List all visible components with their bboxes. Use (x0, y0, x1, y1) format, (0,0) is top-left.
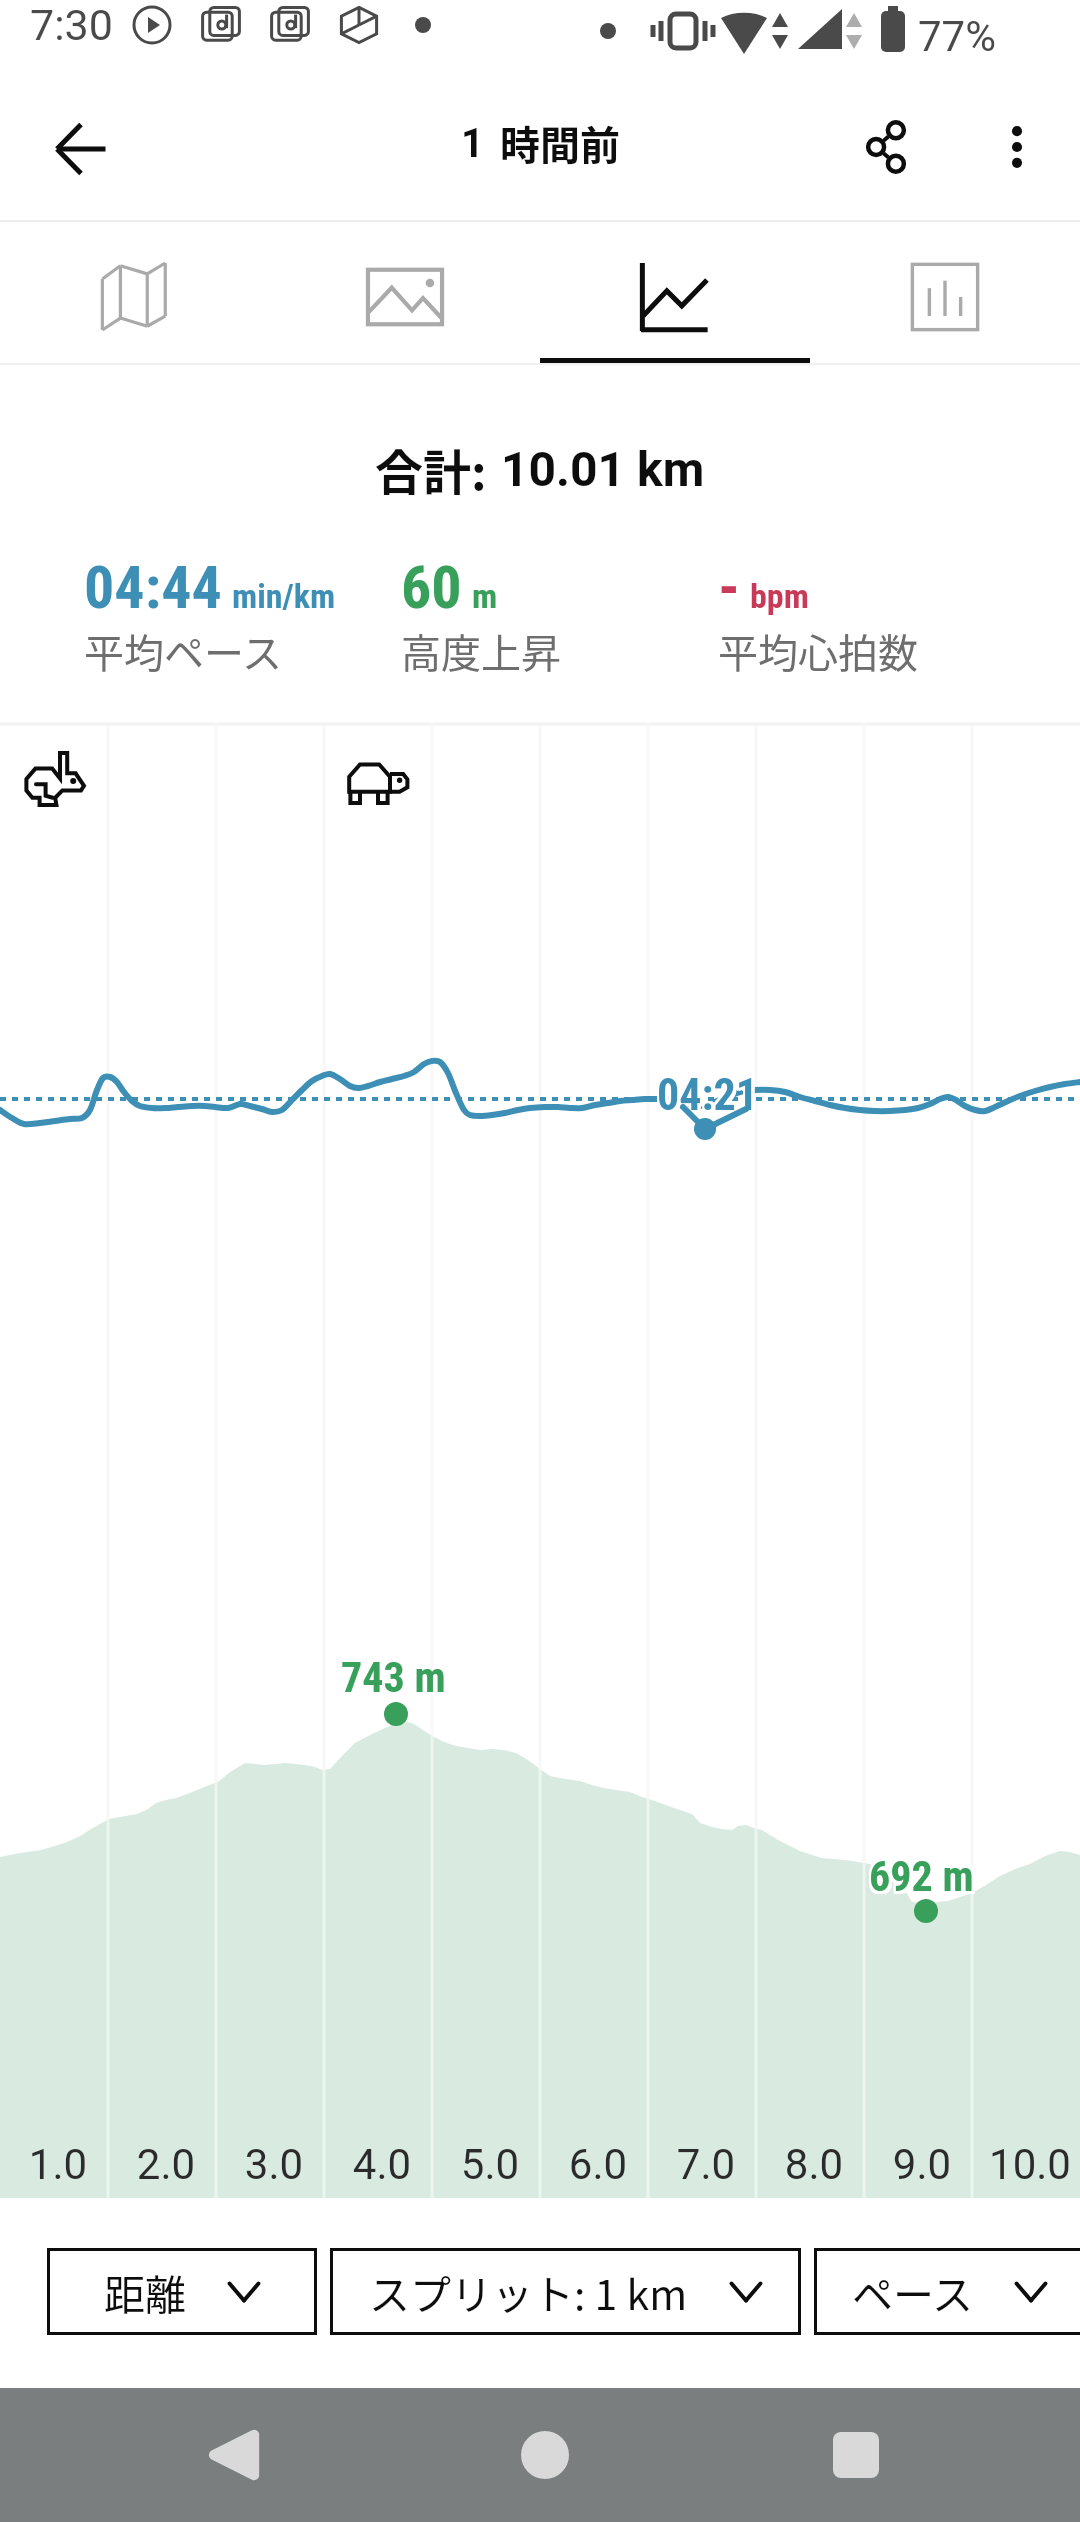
staticText: 04:21 (657, 1069, 759, 1121)
button[interactable]: Share (836, 97, 936, 197)
staticText: 距離 (104, 2262, 186, 2321)
staticText: m (472, 576, 498, 616)
staticText: 10.01 km (501, 441, 705, 497)
staticText: 4.0 (328, 2140, 436, 2189)
staticText: 04:21 (660, 1072, 762, 1124)
staticText: 7.0 (652, 2140, 760, 2189)
staticText: 692 m (869, 1852, 974, 1901)
staticText: 692 m (867, 1852, 972, 1901)
staticText: 743 m (344, 1656, 449, 1705)
staticText: 692 m (867, 1850, 972, 1899)
staticText: 8.0 (760, 2140, 868, 2189)
button[interactable]: Recents (772, 2388, 940, 2522)
staticText: 04:21 (660, 1067, 762, 1119)
staticText: 9.0 (868, 2140, 976, 2189)
button[interactable]: スプリット: 1 km (330, 2248, 801, 2335)
button[interactable]: Photos (270, 222, 540, 365)
button[interactable]: Graphs (540, 222, 810, 365)
staticText: 692 m (869, 1855, 974, 1904)
button[interactable]: ペース (814, 2248, 1080, 2335)
button[interactable]: Back (31, 99, 131, 199)
staticText: 692 m (872, 1855, 977, 1904)
staticText: 743 m (344, 1651, 449, 1700)
staticText: 04:21 (655, 1072, 757, 1124)
staticText: 04:21 (655, 1067, 757, 1119)
button[interactable]: Map (0, 222, 270, 365)
staticText: 692 m (869, 1850, 974, 1899)
staticText: 高度上昇 (401, 622, 561, 680)
staticText: 1.0 (4, 2140, 112, 2189)
staticText: 04:21 (655, 1069, 757, 1121)
staticText: 合計: (375, 434, 487, 504)
staticText: 時間前 (500, 114, 620, 172)
button[interactable]: Splits (810, 222, 1080, 365)
staticText: 7:30 (30, 0, 113, 50)
staticText: 6.0 (544, 2140, 652, 2189)
staticText: 743 m (339, 1651, 444, 1700)
staticText: ペース (852, 2262, 973, 2321)
staticText: 743 m (339, 1656, 444, 1705)
staticText: 743 m (341, 1651, 446, 1700)
staticText: 743 m (339, 1653, 444, 1702)
button[interactable]: Back (150, 2388, 318, 2522)
staticText: 3.0 (220, 2140, 328, 2189)
staticText: 平均ペース (84, 622, 282, 680)
staticText: 1 (461, 120, 484, 167)
staticText: 04:21 (660, 1069, 762, 1121)
staticText: min/km (232, 576, 336, 616)
staticText: 692 m (867, 1855, 972, 1904)
staticText: - (718, 552, 740, 622)
staticText: スプリット: 1 km (369, 2262, 688, 2321)
staticText: 平均心拍数 (718, 622, 918, 680)
staticText: 04:44 (84, 552, 222, 622)
staticText: 10.0 (976, 2140, 1080, 2189)
staticText: 60 (401, 552, 462, 622)
staticText: 04:21 (657, 1067, 759, 1119)
staticText: 77% (918, 12, 996, 61)
staticText: 743 m (344, 1653, 449, 1702)
staticText: 04:21 (657, 1072, 759, 1124)
staticText: 743 m (341, 1656, 446, 1705)
button[interactable]: More options (967, 97, 1067, 197)
staticText: 692 m (872, 1850, 977, 1899)
staticText: bpm (750, 576, 809, 616)
staticText: 743 m (341, 1653, 446, 1702)
staticText: 692 m (872, 1852, 977, 1901)
staticText: 5.0 (436, 2140, 544, 2189)
button[interactable]: Home (461, 2388, 629, 2522)
button[interactable]: 距離 (47, 2248, 317, 2335)
staticText: 2.0 (112, 2140, 220, 2189)
